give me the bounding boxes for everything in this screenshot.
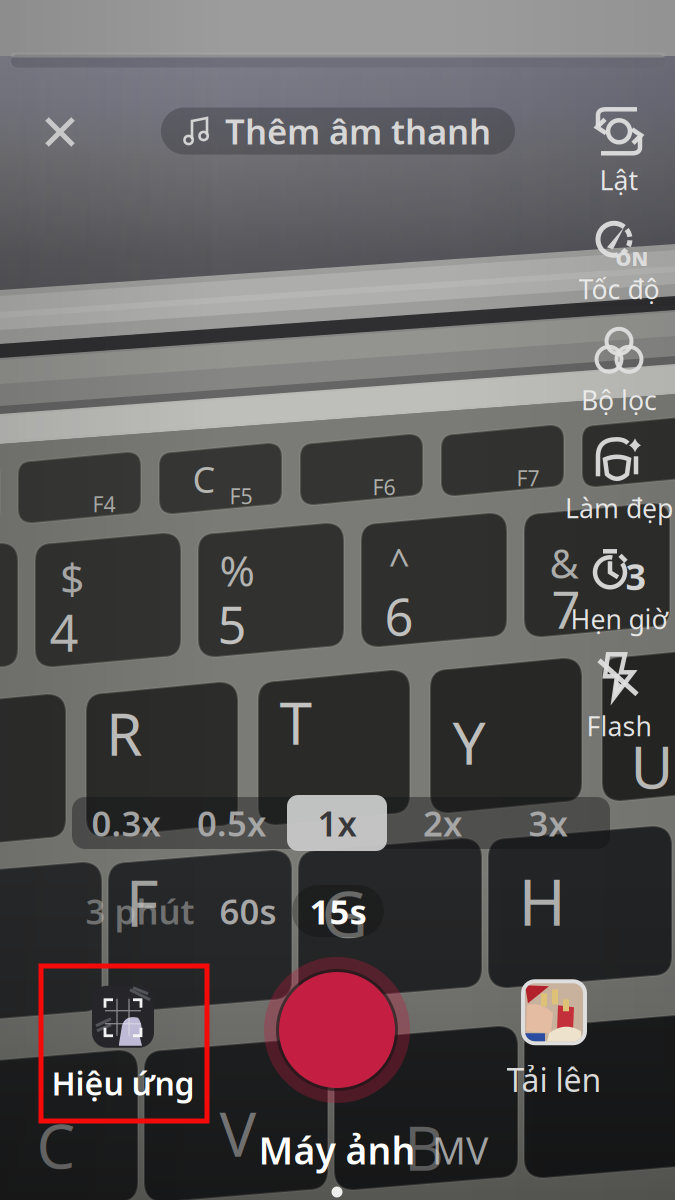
staticText: Y <box>452 703 485 781</box>
button[interactable]: 0.3x <box>76 797 176 849</box>
staticText: 4 <box>49 598 78 666</box>
staticText: T <box>279 683 312 761</box>
staticText: F7 <box>516 464 539 492</box>
staticText: F5 <box>229 482 252 510</box>
staticText: MV <box>432 1125 488 1175</box>
staticText: 3 <box>625 552 646 600</box>
staticText: C <box>36 1104 75 1186</box>
staticText: F6 <box>372 473 395 501</box>
button[interactable]: Quay <box>262 955 412 1105</box>
button[interactable]: Bộ lọc <box>563 329 675 415</box>
button[interactable]: 3x <box>498 797 598 849</box>
button[interactable]: Đóng <box>29 101 91 163</box>
staticText: Flash <box>586 708 651 744</box>
staticText: Bộ lọc <box>581 382 657 418</box>
staticText: F <box>125 859 158 944</box>
button[interactable]: Thêm âm thanh <box>161 107 515 154</box>
button[interactable]: Tải lên <box>479 977 629 1102</box>
button[interactable]: 1x <box>287 795 387 851</box>
button[interactable]: ON <box>563 218 675 304</box>
button[interactable]: 60s <box>200 887 296 935</box>
staticText: 15s <box>309 888 366 934</box>
button[interactable]: Lật <box>563 109 675 195</box>
staticText: H <box>518 858 565 943</box>
staticText: 5 <box>217 590 246 658</box>
button[interactable]: 0.5x <box>181 797 281 849</box>
button[interactable]: Flash <box>563 654 675 740</box>
staticText: & <box>549 536 578 589</box>
staticText: Tải lên <box>506 1058 601 1101</box>
button[interactable]: Làm đẹp <box>563 437 675 523</box>
button[interactable]: 2x <box>392 797 492 849</box>
staticText: 1x <box>317 800 356 846</box>
button[interactable]: MV <box>425 1125 495 1175</box>
staticText: V <box>219 1092 256 1174</box>
staticText: Làm đẹp <box>565 490 673 526</box>
button[interactable]: Hiệu ứng <box>41 983 205 1107</box>
button[interactable]: 15s <box>292 885 384 937</box>
staticText: ^ <box>388 537 409 587</box>
staticText: % <box>219 542 254 598</box>
button[interactable]: 3 <box>563 547 675 633</box>
staticText: 3 phút <box>85 888 194 934</box>
staticText: 60s <box>219 888 276 934</box>
staticText: 3x <box>528 800 567 846</box>
staticText: Thêm âm thanh <box>225 108 491 154</box>
staticText: 0.5x <box>197 800 266 846</box>
staticText: 2x <box>423 800 462 846</box>
staticText: Tốc độ <box>578 271 659 307</box>
staticText: Hiệu ứng <box>51 1062 194 1104</box>
staticText: G <box>321 870 368 955</box>
staticText: $ <box>60 550 84 606</box>
staticText: B <box>404 1106 444 1188</box>
staticText: U <box>630 727 673 805</box>
staticText: Lật <box>599 162 638 198</box>
staticText: Máy ảnh <box>258 1125 415 1175</box>
button[interactable]: 3 phút <box>75 887 205 935</box>
staticText: F4 <box>92 490 115 518</box>
staticText: ON <box>615 245 648 272</box>
staticText: C <box>192 455 215 503</box>
staticText: Hẹn giờ <box>570 601 667 637</box>
staticText: 0.3x <box>91 800 160 846</box>
button[interactable]: Máy ảnh <box>257 1125 417 1175</box>
staticText: R <box>106 694 142 772</box>
staticText: 7 <box>551 575 580 643</box>
staticText: 6 <box>384 582 413 650</box>
